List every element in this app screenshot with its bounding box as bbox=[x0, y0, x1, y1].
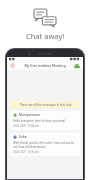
staticText: Erika bbox=[19, 135, 27, 139]
other: Chat bbox=[34, 9, 56, 27]
button[interactable]: These are all the messages in this chat bbox=[10, 101, 80, 108]
staticText: 4 Oct 2021 10:34 am bbox=[13, 124, 39, 128]
staticText: Mustpaniwan bbox=[19, 113, 40, 117]
button[interactable]: Mustpaniwan bbox=[10, 111, 80, 130]
button[interactable]: Erika bbox=[10, 133, 80, 156]
staticText: Chat away! bbox=[26, 31, 65, 41]
staticText: Hello everyone, here to have you here! bbox=[13, 119, 77, 123]
button[interactable]: Back bbox=[10, 63, 15, 68]
staticText: 4 Oct 2021 10:36 pm bbox=[13, 150, 39, 154]
staticText: My first realtime Meeting bbox=[24, 63, 66, 68]
staticText: Well, thank you for the invite. I am cur… bbox=[13, 141, 77, 149]
staticText: These are all the messages in this chat bbox=[19, 103, 72, 107]
button[interactable]: Profile bbox=[74, 63, 80, 69]
